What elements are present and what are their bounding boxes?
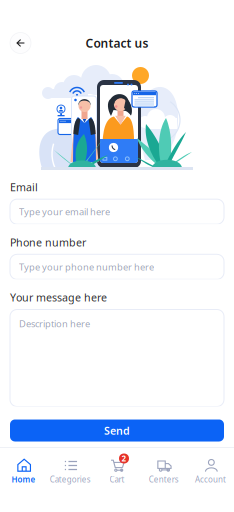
staticText: Cart bbox=[109, 474, 124, 485]
button[interactable]: Centers bbox=[140, 447, 187, 489]
staticText: Categories bbox=[50, 474, 91, 485]
staticText: Description here bbox=[19, 317, 90, 330]
button[interactable]: Account bbox=[187, 447, 234, 489]
staticText: Contact us bbox=[85, 35, 148, 51]
staticText: Centers bbox=[149, 474, 179, 485]
staticText: Your message here bbox=[10, 290, 107, 304]
staticText: Type your phone number here bbox=[19, 261, 154, 273]
staticText: Home bbox=[11, 474, 35, 485]
staticText: Phone number bbox=[10, 235, 86, 249]
staticText: 2 bbox=[121, 453, 126, 464]
staticText: Account bbox=[195, 474, 226, 485]
staticText: Email bbox=[10, 180, 38, 194]
button[interactable]: 2 bbox=[94, 447, 140, 489]
button[interactable]: Categories bbox=[47, 447, 94, 489]
staticText: Send bbox=[104, 423, 130, 438]
button[interactable]: Back bbox=[10, 32, 31, 53]
staticText: Type your email here bbox=[19, 205, 110, 218]
button[interactable]: Send bbox=[10, 419, 224, 441]
button[interactable]: Home bbox=[0, 447, 47, 489]
